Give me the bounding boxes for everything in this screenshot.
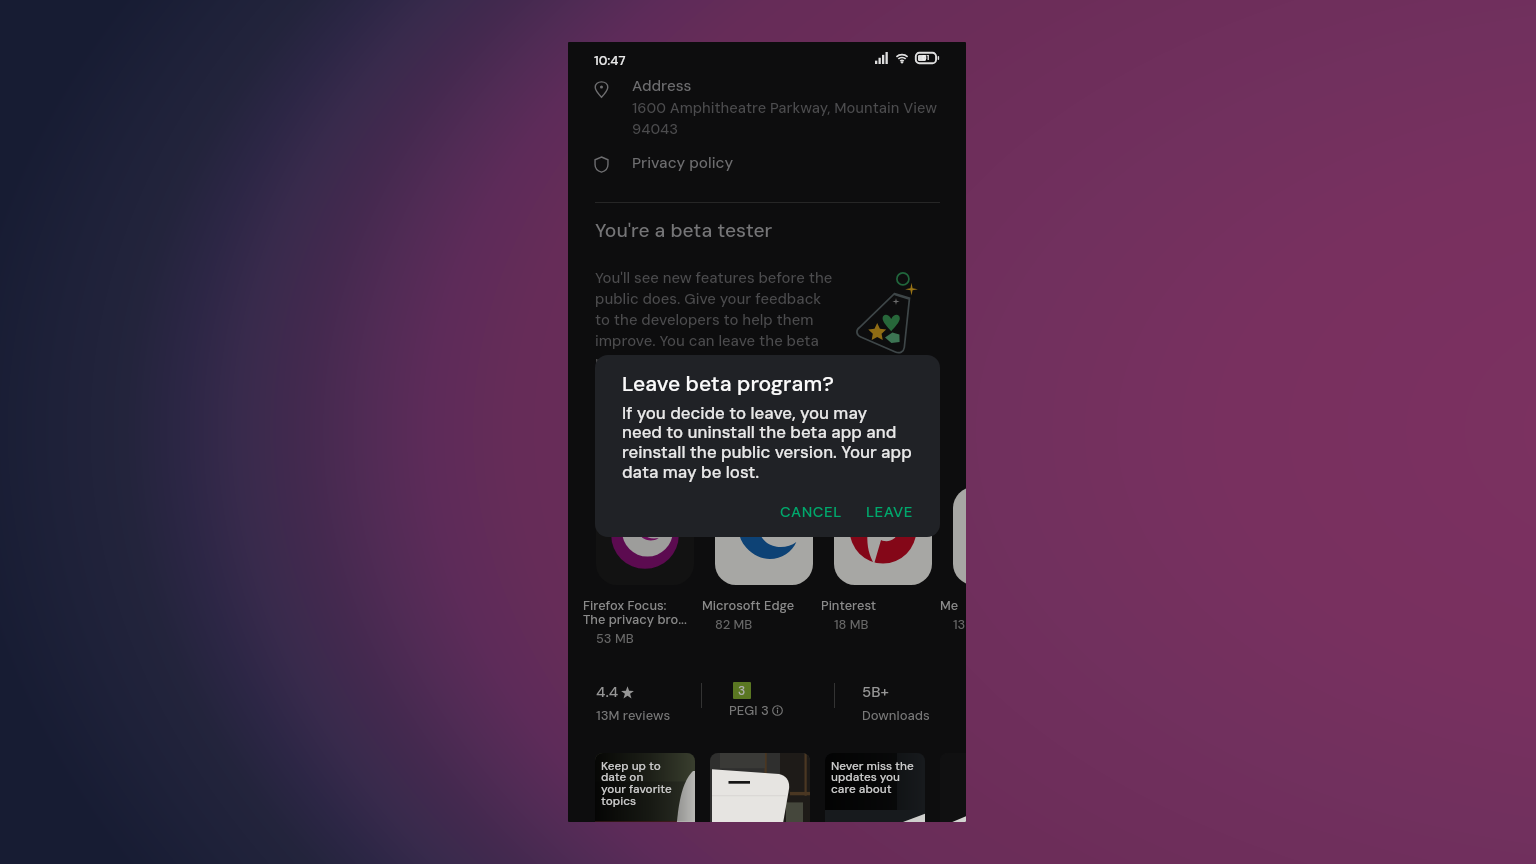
staticText: 13: [953, 616, 966, 633]
staticText: 53 MB: [596, 630, 634, 647]
staticText: PEGI 3: [729, 702, 769, 719]
staticText: Never miss the updates you care about: [831, 758, 914, 797]
button[interactable]: Never miss the updates you care about: [825, 753, 925, 822]
button[interactable]: Keep up to date on your favorite topics: [595, 753, 695, 822]
staticText: 1600 Amphitheatre Parkway, Mountain View…: [632, 98, 944, 139]
button[interactable]: CANCEL: [772, 497, 850, 526]
button[interactable]: [940, 753, 966, 822]
staticText: If you decide to leave, you may need to …: [622, 402, 912, 484]
staticText: 18 MB: [834, 616, 869, 633]
button[interactable]: LEAVE: [858, 497, 921, 526]
button[interactable]: Privacy policy: [632, 153, 734, 173]
button[interactable]: 5B+: [862, 682, 930, 724]
staticText: Keep up to date on your favorite topics: [601, 758, 672, 809]
staticText: Privacy policy: [632, 153, 734, 173]
staticText: CANCEL: [780, 502, 842, 521]
staticText: Address: [632, 76, 692, 96]
button[interactable]: Firefox Focus: The privacy bro...: [596, 487, 694, 647]
staticText: Leave beta program?: [622, 370, 835, 397]
button[interactable]: Microsoft Edge: [715, 487, 813, 633]
staticText: Pinterest: [821, 597, 946, 614]
staticText: 5B+: [862, 682, 889, 702]
staticText: Me: [940, 597, 966, 614]
staticText: 10:47: [594, 52, 626, 69]
staticText: You'll see new features before the publi…: [595, 268, 833, 372]
button[interactable]: 4.4: [596, 682, 671, 724]
button[interactable]: [710, 753, 810, 822]
staticText: 4.4: [596, 682, 619, 702]
staticText: 51: [922, 53, 930, 63]
button[interactable]: 3: [729, 682, 783, 719]
staticText: Microsoft Edge: [702, 597, 827, 614]
button[interactable]: Address: [632, 76, 952, 139]
staticText: 3: [738, 683, 746, 699]
button[interactable]: Pinterest: [834, 487, 932, 633]
staticText: Firefox Focus: The privacy bro...: [583, 597, 708, 628]
staticText: LEAVE: [866, 502, 913, 521]
staticText: You're a beta tester: [595, 218, 773, 243]
staticText: 13M reviews: [596, 707, 671, 724]
staticText: 82 MB: [715, 616, 753, 633]
button[interactable]: Me: [953, 487, 966, 633]
staticText: Downloads: [862, 707, 930, 724]
